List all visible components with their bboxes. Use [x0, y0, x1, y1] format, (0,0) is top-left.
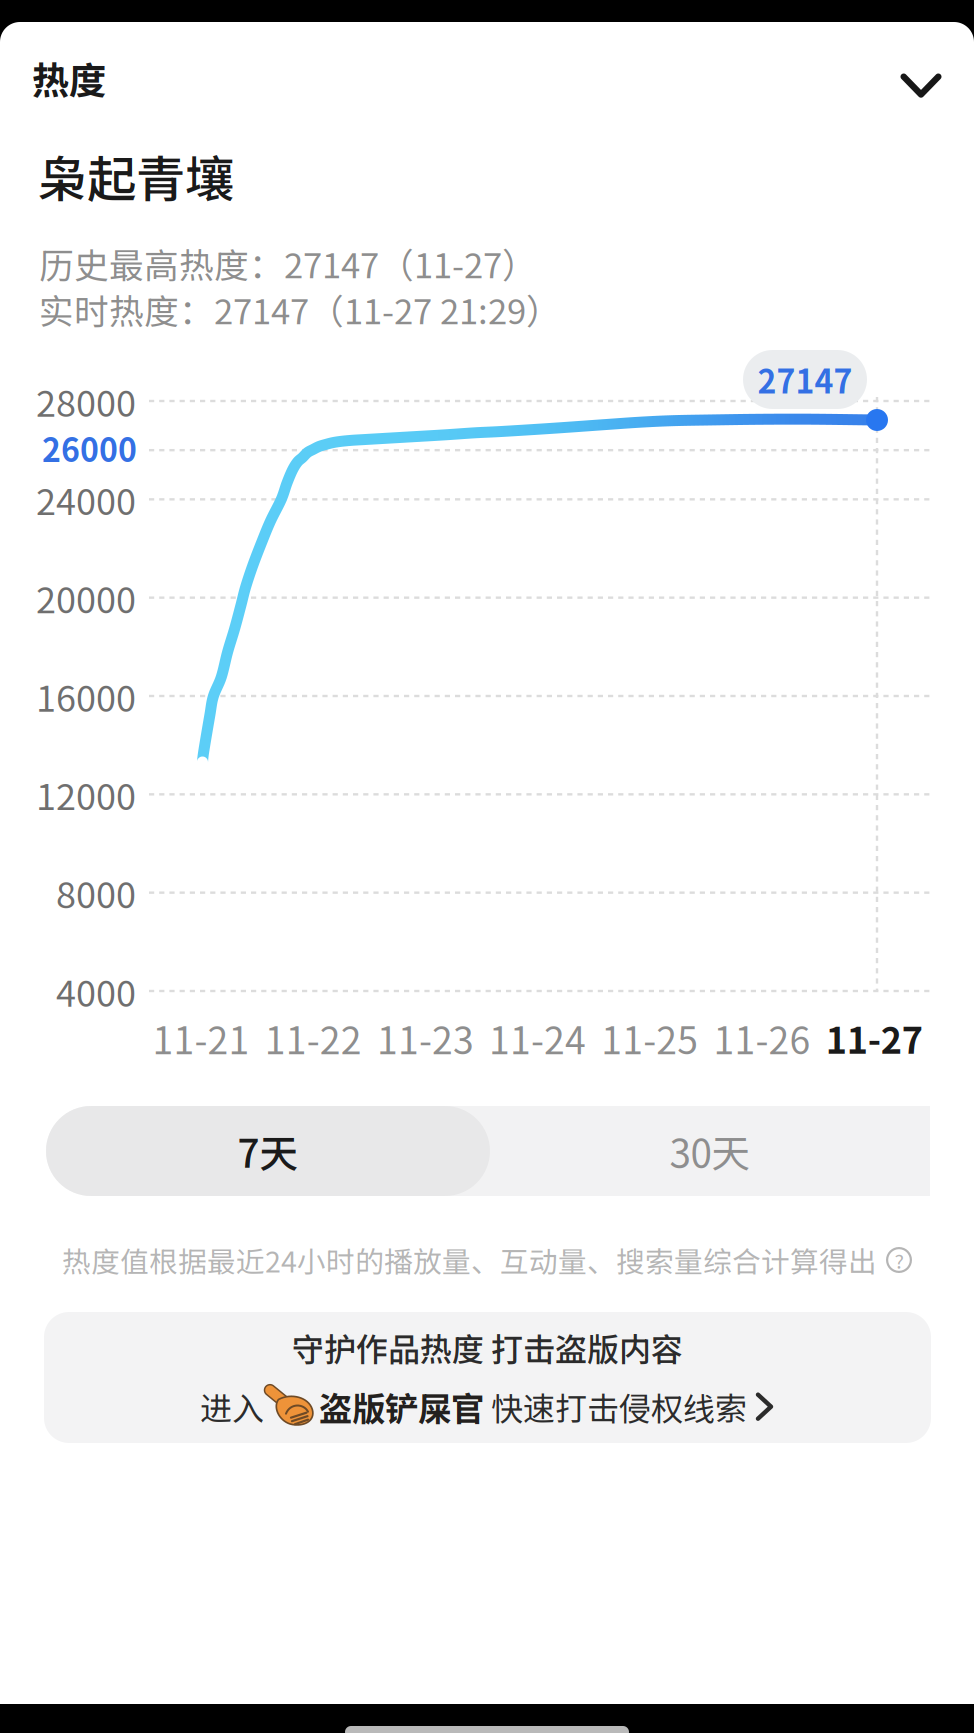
staticText: 枭起青壤: [38, 140, 234, 211]
button[interactable]: 7天: [46, 1106, 490, 1196]
staticText: 进入: [200, 1383, 264, 1430]
staticText: 28000: [36, 375, 136, 427]
staticText: 守护作品热度 打击盗版内容: [292, 1324, 683, 1370]
staticText: 26000: [42, 425, 137, 471]
staticText: 7天: [237, 1123, 298, 1179]
staticText: 8000: [56, 867, 136, 919]
staticText: 热度值根据最近24小时的播放量、互动量、搜索量综合计算得出: [62, 1239, 877, 1281]
staticText: 11-22: [265, 1011, 362, 1065]
staticText: 实时热度：27147（11-27 21:29）: [39, 284, 561, 334]
staticText: 11-24: [489, 1011, 586, 1065]
staticText: 11-27: [826, 1012, 923, 1064]
staticText: ?: [894, 1245, 903, 1274]
staticText: 12000: [36, 768, 136, 820]
staticText: 4000: [56, 965, 136, 1017]
button[interactable]: Collapse: [876, 42, 966, 130]
staticText: 热度: [32, 51, 106, 105]
staticText: 盗版铲屎官: [319, 1382, 484, 1431]
button[interactable]: 守护作品热度 打击盗版内容: [44, 1312, 931, 1443]
staticText: 11-23: [377, 1011, 474, 1065]
staticText: 16000: [36, 670, 136, 722]
staticText: 11-25: [601, 1011, 698, 1065]
staticText: 27147: [757, 356, 852, 403]
staticText: 历史最高热度：27147（11-27）: [39, 238, 537, 288]
staticText: 24000: [36, 473, 136, 525]
staticText: 快速打击侵权线索: [484, 1383, 754, 1430]
staticText: 11-21: [152, 1011, 249, 1065]
staticText: 20000: [36, 572, 136, 624]
button[interactable]: 30天: [490, 1106, 930, 1196]
staticText: 30天: [669, 1123, 750, 1179]
staticText: 11-26: [713, 1011, 810, 1065]
